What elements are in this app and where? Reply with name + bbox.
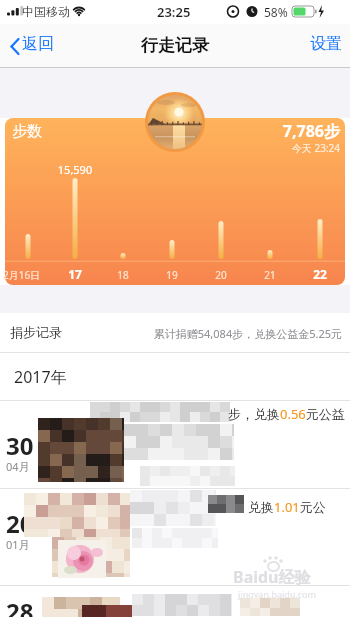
staticText: 23:25 <box>157 3 191 21</box>
button[interactable] <box>0 488 350 585</box>
staticText: 2月16日 <box>3 268 41 282</box>
staticText: 中国移动 <box>22 4 70 19</box>
button[interactable] <box>0 585 350 617</box>
button[interactable]: 设置 <box>284 32 342 62</box>
staticText: 20 <box>6 507 34 540</box>
staticText: 17 <box>65 266 85 282</box>
staticText: 18 <box>113 268 133 282</box>
staticText: jingyan.baidu.com <box>238 588 316 600</box>
staticText: 兑换1.01元公 <box>248 498 326 516</box>
staticText: 15,590 <box>53 162 97 177</box>
staticText: 30 <box>6 429 34 462</box>
staticText: 19 <box>162 268 182 282</box>
staticText: 7,786步 <box>0 120 340 142</box>
staticText: 2017年 <box>14 366 67 388</box>
staticText: 行走记录 <box>0 35 350 56</box>
button[interactable]: 返回 <box>8 32 78 62</box>
staticText: 21 <box>260 268 280 282</box>
staticText: 04月 <box>6 459 30 474</box>
staticText: 28 <box>6 595 34 617</box>
staticText: 今天 23:24 <box>0 141 340 155</box>
staticText: 返回 <box>22 34 54 54</box>
staticText: 设置 <box>298 34 342 54</box>
staticText: Baidu经验 <box>233 566 311 588</box>
staticText: 20 <box>211 268 231 282</box>
button[interactable]: 2017年 <box>0 352 350 400</box>
staticText: 01月 <box>6 537 30 552</box>
button[interactable] <box>0 400 350 488</box>
staticText: 步，兑换0.56元公益 <box>228 405 345 423</box>
staticText: 步数 <box>12 122 42 141</box>
staticText: 22 <box>310 266 330 282</box>
staticText: 捐步记录 <box>10 324 62 340</box>
staticText: 累计捐赠54,084步，兑换公益金5.25元 <box>0 326 342 341</box>
button[interactable]: 捐步记录 <box>0 313 350 352</box>
staticText: 58% <box>264 4 288 20</box>
